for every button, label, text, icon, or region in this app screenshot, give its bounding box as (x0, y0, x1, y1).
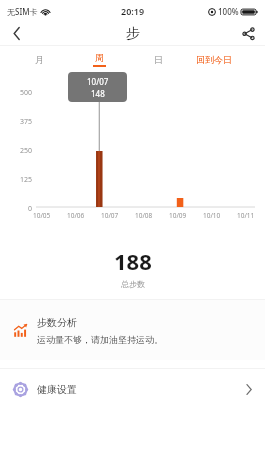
button[interactable]: 健康设置 (0, 369, 265, 409)
staticText: 125 (10, 175, 32, 185)
staticText: 周 (95, 52, 104, 63)
staticText: 10/07 (101, 211, 119, 220)
staticText: 步数分析 (37, 316, 77, 329)
staticText: 148 (91, 88, 105, 99)
button[interactable]: Share (236, 22, 260, 45)
staticText: 375 (10, 117, 32, 127)
staticText: 10/09 (169, 211, 187, 220)
staticText: 总步数 (121, 279, 145, 289)
button[interactable]: Back (4, 22, 30, 45)
staticText: 250 (10, 146, 32, 156)
staticText: 步 (126, 25, 140, 43)
staticText: 100% (218, 6, 239, 17)
staticText: 188 (114, 246, 152, 276)
button[interactable]: 回到今日 (190, 47, 238, 71)
button[interactable]: 步数分析 (0, 300, 265, 360)
staticText: 运动量不够，请加油坚持运动。 (37, 334, 163, 345)
staticText: 20:19 (121, 5, 145, 17)
staticText: 10/07 (87, 76, 109, 87)
button[interactable]: 10/07 (68, 72, 127, 102)
staticText: 回到今日 (196, 54, 232, 65)
staticText: 10/06 (67, 211, 85, 220)
staticText: 10/05 (33, 211, 51, 220)
staticText: 月 (35, 54, 44, 65)
button[interactable]: 周 (86, 47, 112, 71)
staticText: 日 (154, 54, 163, 65)
staticText: 10/11 (237, 211, 255, 220)
button[interactable]: 月 (26, 47, 52, 71)
staticText: 10/08 (135, 211, 153, 220)
staticText: 10/10 (203, 211, 221, 220)
staticText: 健康设置 (37, 383, 77, 396)
button[interactable]: 日 (145, 47, 171, 71)
staticText: 0 (10, 204, 32, 214)
staticText: 500 (10, 88, 32, 98)
staticText: 无SIM卡 (7, 6, 38, 17)
